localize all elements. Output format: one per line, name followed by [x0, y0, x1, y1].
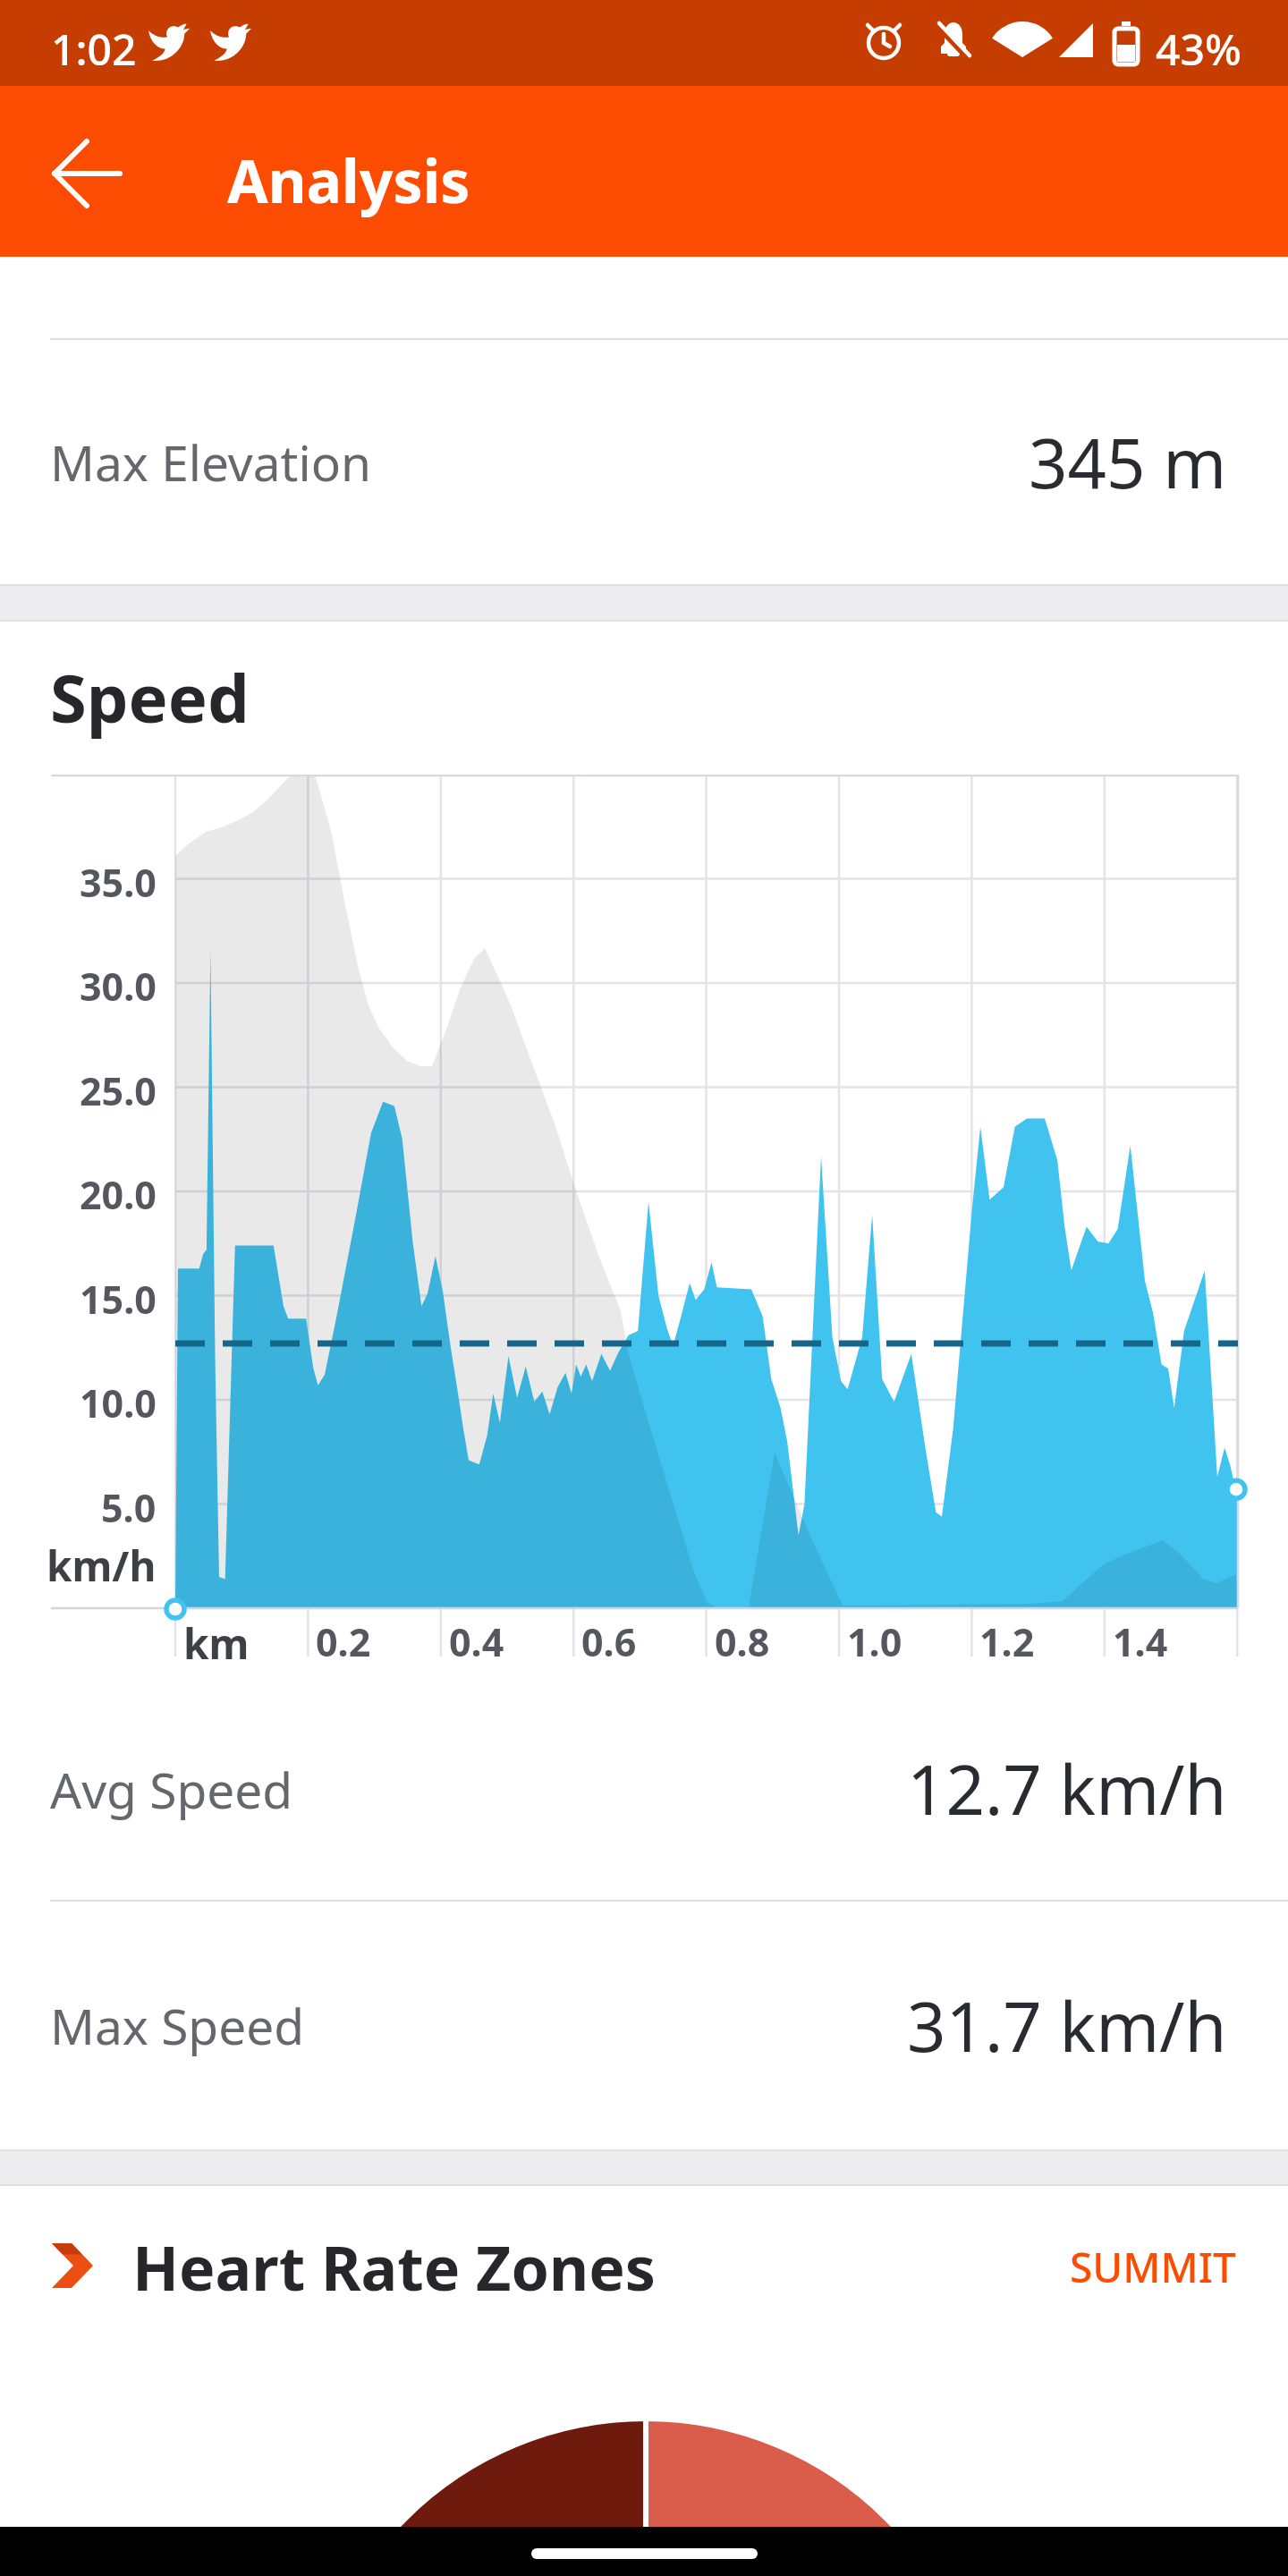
staticText: Max Elevation: [50, 428, 371, 496]
staticText: km/h: [47, 1538, 157, 1591]
staticText: Heart Rate Zones: [132, 2225, 656, 2309]
staticText: 35.0: [80, 856, 157, 902]
staticText: SUMMIT: [1070, 2239, 1236, 2295]
staticText: 20.0: [80, 1168, 157, 1215]
staticText: 30.0: [80, 960, 157, 1006]
staticText: 12.7 km/h: [907, 1742, 1227, 1835]
staticText: km: [183, 1615, 250, 1667]
button[interactable]: Max Speed: [50, 1902, 1227, 2149]
staticText: 1.4: [1113, 1615, 1168, 1667]
staticText: Analysis: [227, 140, 470, 220]
button[interactable]: Avg Speed: [50, 1678, 1227, 1900]
staticText: Avg Speed: [50, 1756, 293, 1823]
staticText: 0.2: [316, 1615, 371, 1667]
button[interactable]: [0, 2527, 1288, 2576]
staticText: 0.6: [581, 1615, 637, 1667]
staticText: 31.7 km/h: [907, 1979, 1227, 2072]
staticText: Max Speed: [50, 1992, 305, 2059]
staticText: 1.0: [847, 1615, 902, 1667]
staticText: 5.0: [101, 1481, 157, 1528]
staticText: 10.0: [80, 1377, 157, 1423]
staticText: 1.2: [979, 1615, 1035, 1667]
staticText: 25.0: [80, 1064, 157, 1111]
button[interactable]: SUMMIT: [1070, 2239, 1236, 2295]
button[interactable]: Max Elevation: [50, 340, 1227, 584]
staticText: 15.0: [80, 1273, 157, 1319]
staticText: 345 m: [1029, 416, 1227, 509]
staticText: 43%: [1156, 20, 1241, 78]
staticText: Speed: [50, 652, 250, 741]
staticText: 0.4: [449, 1615, 504, 1667]
staticText: 0.8: [715, 1615, 770, 1667]
button[interactable]: [36, 122, 139, 225]
staticText: 1:02: [51, 20, 137, 78]
